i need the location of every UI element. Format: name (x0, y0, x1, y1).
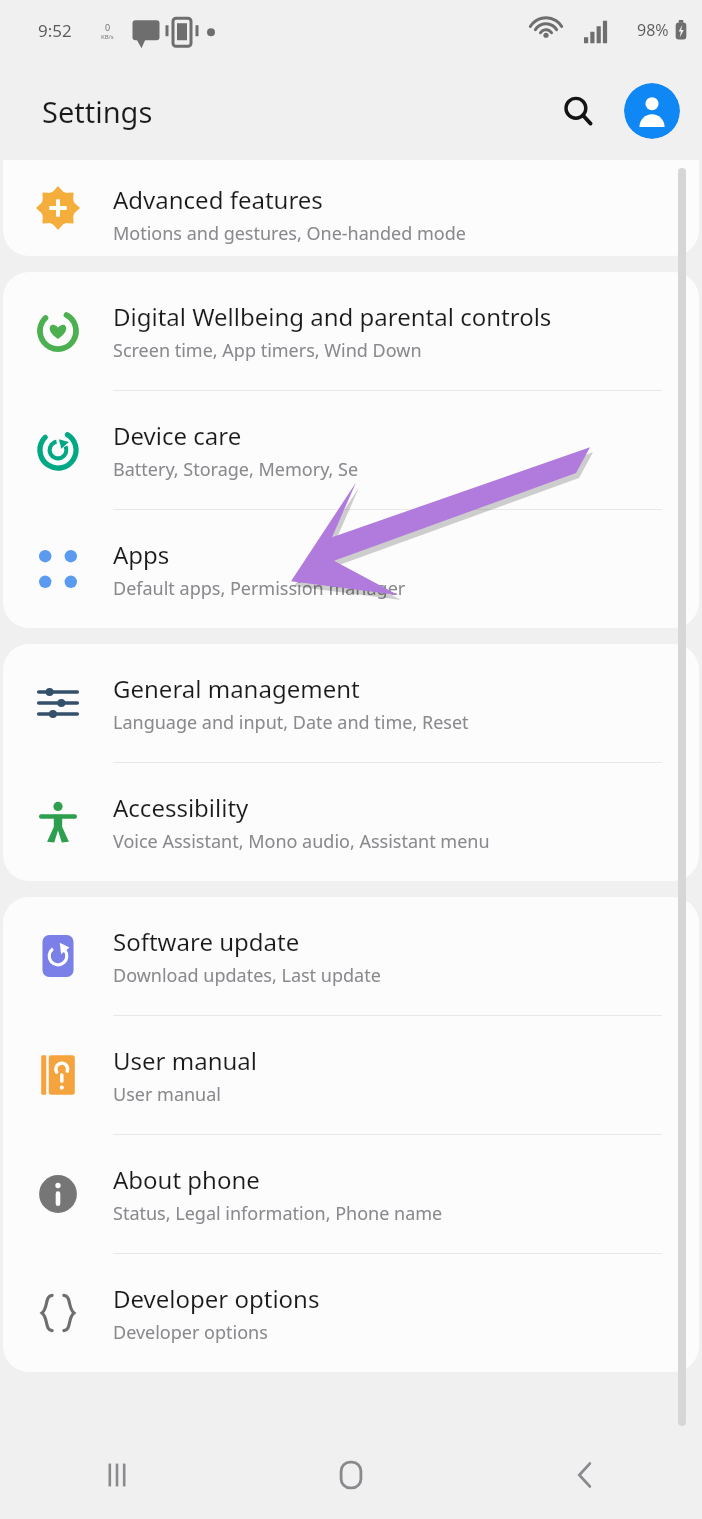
button[interactable]: Accessibility (3, 763, 699, 881)
button[interactable]: Digital Wellbeing and parental controls (3, 272, 699, 390)
staticText: Default apps, Permission manager (113, 576, 406, 601)
staticText: KB/s (101, 33, 114, 41)
button[interactable]: Software update (3, 897, 699, 1015)
staticText: Download updates, Last update (113, 963, 381, 988)
button[interactable]: General management (3, 644, 699, 762)
staticText: Device care (113, 419, 242, 452)
staticText: Voice Assistant, Mono audio, Assistant m… (113, 829, 490, 854)
button[interactable]: Advanced features (3, 160, 699, 256)
staticText: Accessibility (113, 791, 249, 824)
staticText: 9:52 (38, 19, 72, 42)
staticText: Developer options (113, 1282, 320, 1315)
button[interactable]: Device care (3, 391, 699, 509)
button[interactable]: Home (234, 1430, 468, 1519)
staticText: Apps (113, 538, 170, 571)
staticText: 98% (637, 19, 669, 41)
staticText: Settings (42, 92, 153, 131)
staticText: Motions and gestures, One-handed mode (113, 221, 466, 246)
button[interactable]: About phone (3, 1135, 699, 1253)
staticText: Advanced features (113, 183, 323, 216)
staticText: Screen time, App timers, Wind Down (113, 338, 422, 363)
staticText: About phone (113, 1163, 260, 1196)
button[interactable]: Apps (3, 510, 699, 628)
button[interactable]: Account (624, 83, 680, 139)
staticText: Language and input, Date and time, Reset (113, 710, 469, 735)
staticText: Digital Wellbeing and parental controls (113, 300, 552, 333)
button[interactable]: Developer options (3, 1254, 699, 1372)
staticText: 0 (105, 21, 111, 33)
staticText: Status, Legal information, Phone name (113, 1201, 443, 1226)
staticText: General management (113, 672, 360, 705)
button[interactable]: Search (550, 83, 606, 139)
staticText: User manual (113, 1044, 257, 1077)
staticText: Developer options (113, 1320, 268, 1345)
staticText: User manual (113, 1082, 221, 1107)
staticText: Battery, Storage, Memory, Se (113, 457, 359, 482)
staticText: Software update (113, 925, 300, 958)
button[interactable]: Recents (0, 1430, 234, 1519)
button[interactable]: Back (468, 1430, 702, 1519)
button[interactable]: User manual (3, 1016, 699, 1134)
